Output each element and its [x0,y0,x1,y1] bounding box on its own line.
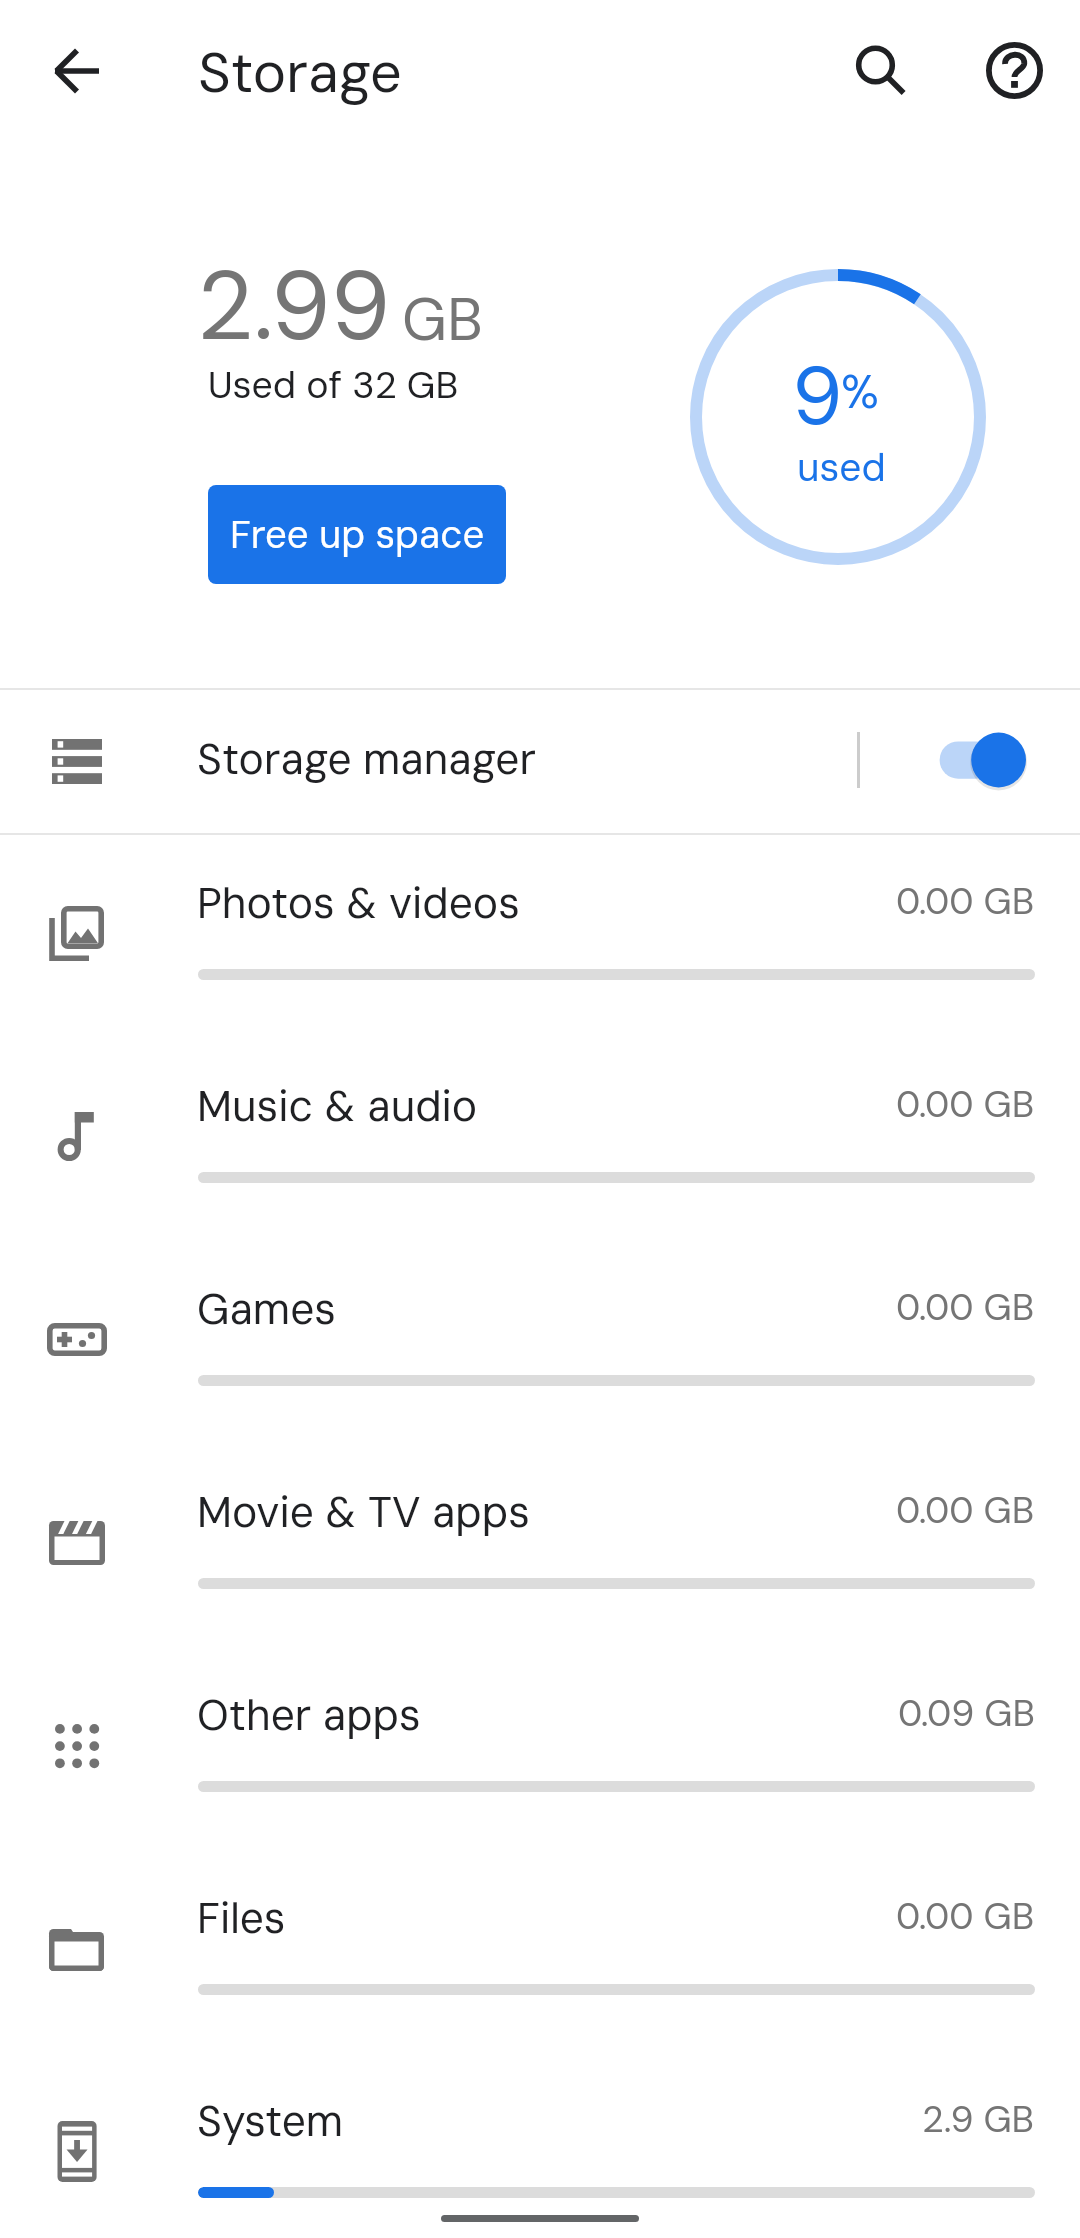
button[interactable]: Help [968,25,1060,117]
staticText: Other apps [197,1688,421,1743]
staticText: Movie & TV apps [197,1485,530,1540]
staticText: 9 [792,344,843,449]
staticText: Free up space [230,510,485,560]
staticText: 0.00 GB [896,877,1035,925]
staticText: Music & audio [197,1079,478,1134]
staticText: Used of 32 GB [208,361,459,410]
staticText: System [197,2094,344,2149]
button[interactable]: Files [0,1853,1080,2056]
staticText: 0.09 GB [898,1689,1035,1737]
button[interactable]: Storage manager [0,690,1080,833]
staticText: Games [197,1282,336,1337]
staticText: GB [402,281,483,358]
staticText: 2.9 GB [922,2095,1035,2143]
button[interactable]: Photos & videos [0,838,1080,1041]
button[interactable]: Back [31,25,123,117]
button[interactable]: Music & audio [0,1041,1080,1244]
staticText: used [797,442,886,493]
button[interactable]: Games [0,1244,1080,1447]
staticText: Files [197,1891,286,1946]
staticText: Storage manager [197,732,536,787]
staticText: 0.00 GB [896,1283,1035,1331]
button[interactable]: System [0,2056,1080,2238]
button[interactable]: Movie & TV apps [0,1447,1080,1650]
button[interactable]: Free up space [208,485,506,584]
staticText: % [841,362,879,422]
staticText: 0.00 GB [896,1486,1035,1534]
button[interactable]: Search [829,24,921,116]
staticText: Storage [198,36,402,109]
staticText: 0.00 GB [896,1892,1035,1940]
staticText: 2.99 [197,244,391,369]
staticText: Photos & videos [197,876,520,931]
staticText: 0.00 GB [896,1080,1035,1128]
button[interactable]: Other apps [0,1650,1080,1853]
